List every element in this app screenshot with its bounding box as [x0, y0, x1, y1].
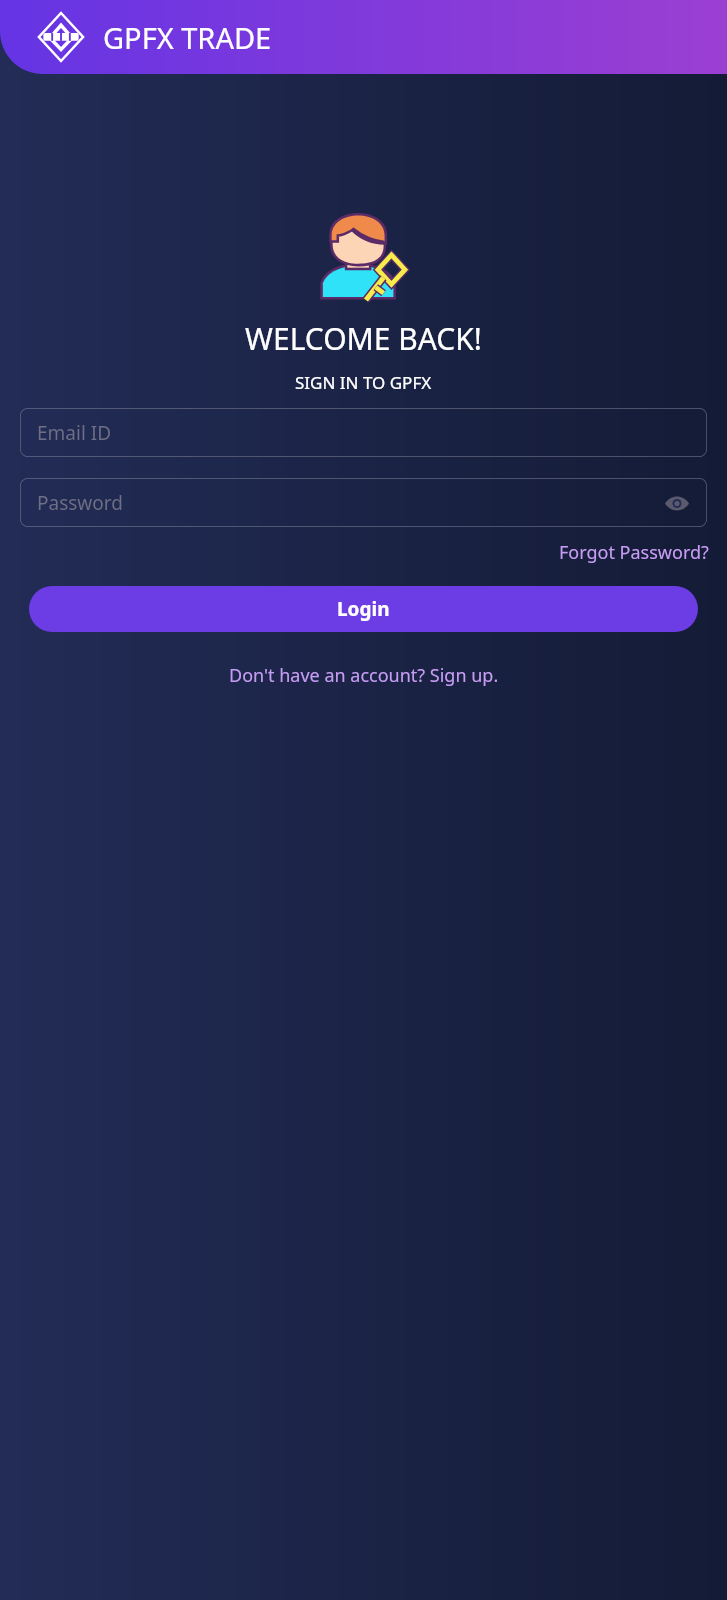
- button[interactable]: Forgot Password?: [555, 535, 713, 570]
- staticText: Login: [337, 596, 390, 622]
- staticText: Don't have an account? Sign up.: [229, 663, 499, 688]
- button[interactable]: Login: [29, 586, 698, 632]
- button[interactable]: Show password: [663, 489, 691, 517]
- staticText: WELCOME BACK!: [245, 318, 482, 359]
- staticText: Forgot Password?: [559, 540, 709, 565]
- staticText: SIGN IN TO GPFX: [295, 371, 432, 394]
- button[interactable]: Password: [20, 478, 707, 527]
- staticText: Password: [37, 490, 123, 516]
- staticText: Email ID: [37, 420, 112, 446]
- staticText: GPFX TRADE: [103, 18, 272, 57]
- button[interactable]: Don't have an account? Sign up.: [223, 658, 505, 693]
- button[interactable]: Email ID: [20, 408, 707, 457]
